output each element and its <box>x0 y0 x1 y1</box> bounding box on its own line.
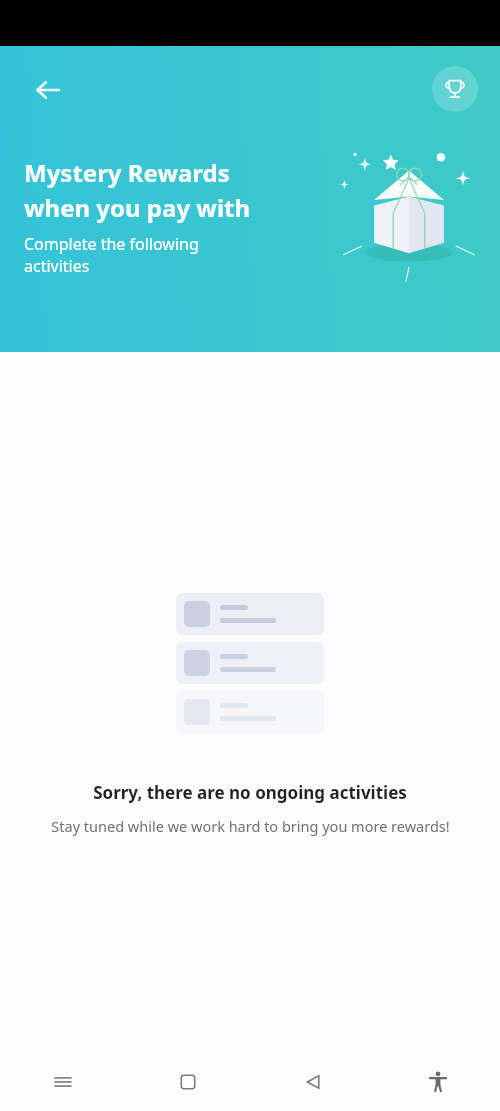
staticText: Complete the following <box>24 233 199 255</box>
staticText: Sorry, there are no ongoing activities <box>93 781 407 804</box>
staticText: Stay tuned while we work hard to bring y… <box>51 816 450 836</box>
button[interactable]: Back <box>250 1053 375 1111</box>
staticText: activities <box>24 255 90 277</box>
staticText: when you pay with <box>24 191 251 224</box>
button[interactable]: Rewards history <box>432 66 478 112</box>
button[interactable]: Home <box>125 1053 250 1111</box>
staticText: Mystery Rewards <box>24 156 230 189</box>
button[interactable]: Back <box>24 66 72 114</box>
button[interactable]: Recent apps <box>0 1053 125 1111</box>
button[interactable]: Accessibility <box>375 1053 500 1111</box>
